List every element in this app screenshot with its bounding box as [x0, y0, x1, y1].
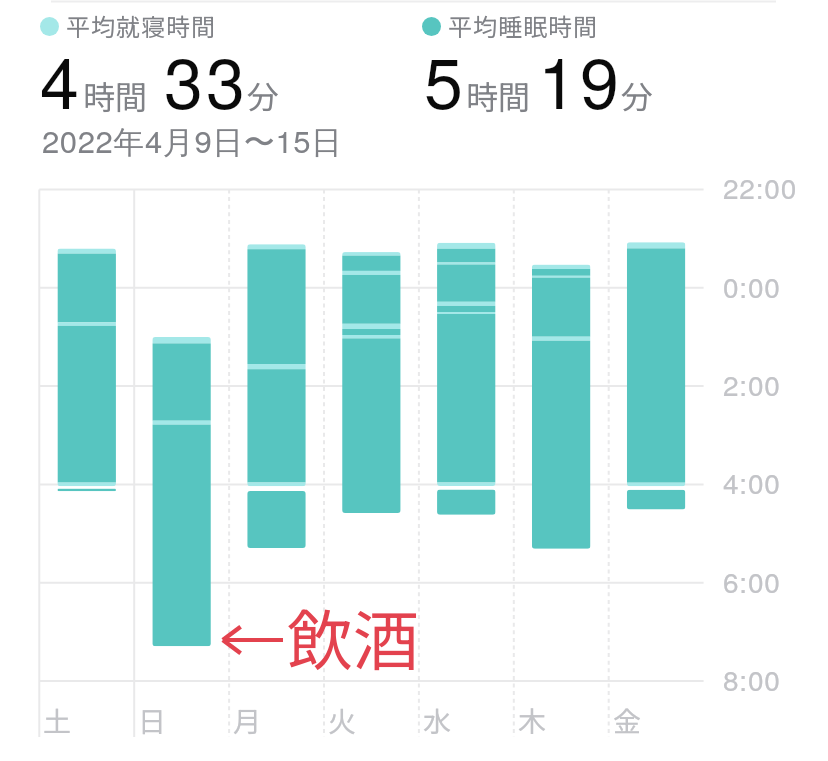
staticText: 4:00 — [723, 462, 781, 502]
button[interactable]: 金 — [613, 700, 657, 736]
button[interactable]: 日 — [138, 700, 182, 736]
staticText: 5 — [424, 29, 463, 129]
staticText: 2:00 — [723, 364, 781, 404]
staticText: 分 — [247, 72, 280, 118]
staticText: 金 — [613, 700, 642, 736]
button[interactable]: 平均就寝時間 — [40, 17, 209, 52]
staticText: 22:00 — [723, 167, 798, 207]
staticText: 水 — [423, 700, 452, 736]
button[interactable]: Alcohol marker — [218, 620, 288, 660]
button[interactable]: 土 — [43, 700, 87, 736]
button[interactable]: 月 — [233, 700, 277, 736]
staticText: 2022年4月9日〜15日 — [42, 117, 343, 162]
staticText: 時間 — [466, 72, 531, 118]
staticText: 時間 — [83, 72, 148, 118]
staticText: 33 — [164, 29, 248, 129]
staticText: 4 — [40, 29, 79, 129]
staticText: 火 — [328, 700, 357, 736]
button[interactable]: 木 — [518, 700, 562, 736]
staticText: 6:00 — [723, 561, 781, 601]
staticText: 平均就寝時間 — [66, 8, 216, 43]
staticText: 分 — [621, 72, 654, 118]
staticText: 木 — [518, 700, 547, 736]
staticText: 0:00 — [723, 266, 781, 306]
staticText: 19 — [538, 29, 622, 129]
button[interactable]: 平均睡眠時間 — [422, 17, 591, 52]
staticText: 平均睡眠時間 — [448, 8, 598, 43]
staticText: 8:00 — [723, 659, 781, 699]
staticText: 月 — [233, 700, 262, 736]
button[interactable]: 水 — [423, 700, 467, 736]
staticText: 日 — [138, 700, 167, 736]
staticText: 飲酒 — [287, 588, 419, 684]
staticText: 土 — [43, 700, 72, 736]
button[interactable]: 火 — [328, 700, 372, 736]
